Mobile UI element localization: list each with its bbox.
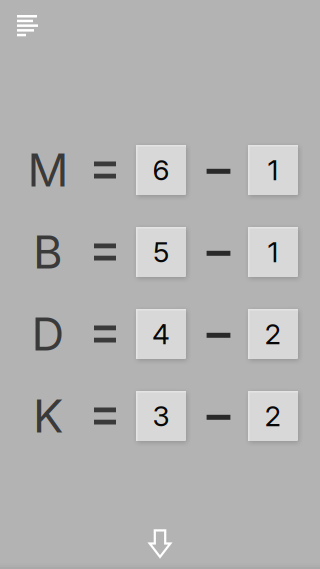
button[interactable]: Menu	[0, 0, 50, 48]
staticText: B	[33, 225, 63, 279]
staticText: 5	[153, 235, 169, 269]
staticText: 1	[267, 235, 278, 269]
button[interactable]: Scroll down	[135, 515, 185, 569]
staticText: K	[33, 389, 63, 443]
staticText: 4	[152, 317, 170, 351]
staticText: 2	[264, 399, 281, 433]
staticText: 2	[264, 317, 281, 351]
staticText: M	[27, 143, 68, 197]
staticText: D	[31, 307, 64, 361]
staticText: 3	[152, 399, 169, 433]
staticText: 6	[152, 153, 169, 187]
staticText: 1	[267, 153, 278, 187]
